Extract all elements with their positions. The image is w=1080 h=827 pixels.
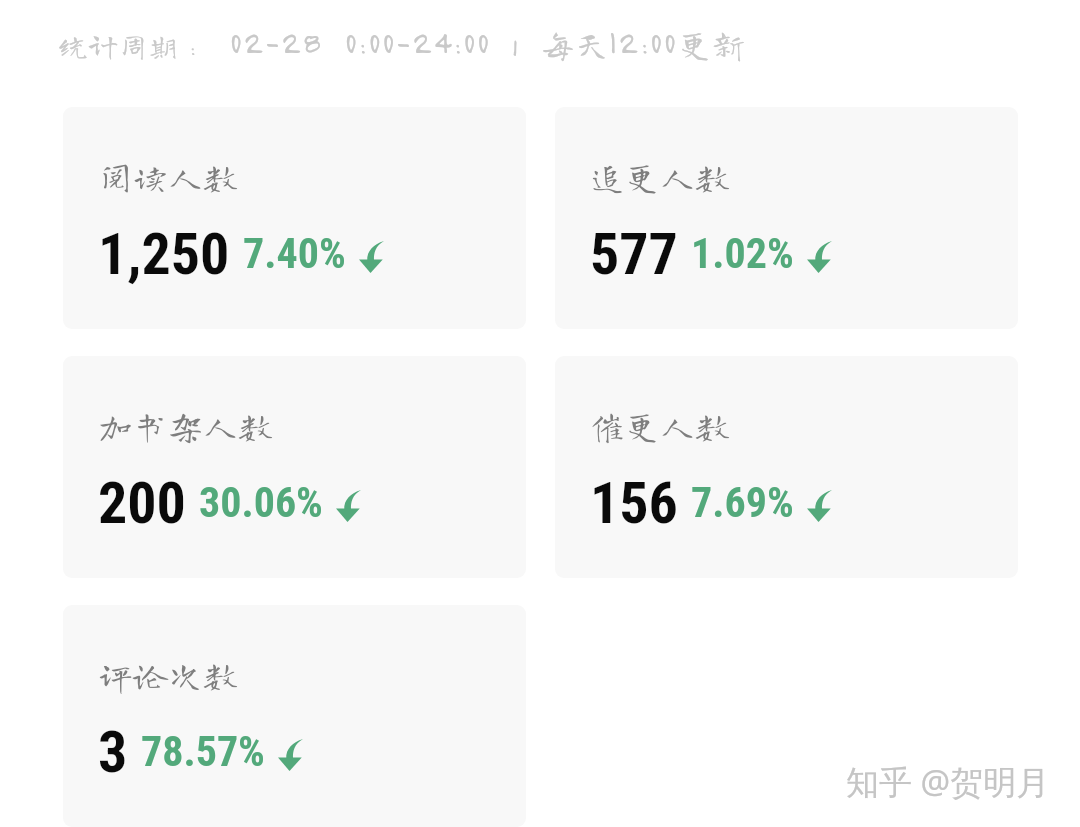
staticText: 知乎 @贺明月 <box>846 759 1050 804</box>
staticText: 阅读人数 <box>98 159 239 194</box>
button[interactable]: 追更人数 <box>555 107 1018 329</box>
other: Decrease <box>336 490 361 522</box>
staticText: 每天 <box>541 27 609 61</box>
staticText: 1.02% <box>691 229 794 278</box>
staticText: 追更人数 <box>590 159 731 194</box>
button[interactable]: 阅读人数 <box>63 107 526 329</box>
staticText: 78.57% <box>141 727 265 776</box>
staticText: 7.40% <box>243 229 346 278</box>
staticText: 更新 <box>678 27 746 61</box>
staticText: 200 <box>98 469 186 537</box>
other: Decrease <box>359 241 384 273</box>
button[interactable]: 催更人数 <box>555 356 1018 578</box>
staticText: 156 <box>590 469 678 537</box>
staticText: 加书架人数 <box>98 408 274 443</box>
staticText: | <box>511 27 517 61</box>
staticText: 12:00 <box>609 23 678 61</box>
staticText: 评论次数 <box>98 657 239 692</box>
staticText: 统计周期： <box>58 31 208 61</box>
staticText: 02-28 0:00-24:00 <box>230 23 491 61</box>
button[interactable]: 评论次数 <box>63 605 526 827</box>
staticText: 3 <box>98 718 128 786</box>
other: Decrease <box>807 490 832 522</box>
other: Decrease <box>807 241 832 273</box>
staticText: 1,250 <box>98 220 230 288</box>
staticText: 催更人数 <box>590 408 731 443</box>
staticText: 577 <box>590 220 678 288</box>
button[interactable]: 加书架人数 <box>63 356 526 578</box>
staticText: 7.69% <box>691 478 794 527</box>
staticText: 30.06% <box>199 478 323 527</box>
other: Decrease <box>278 739 303 771</box>
